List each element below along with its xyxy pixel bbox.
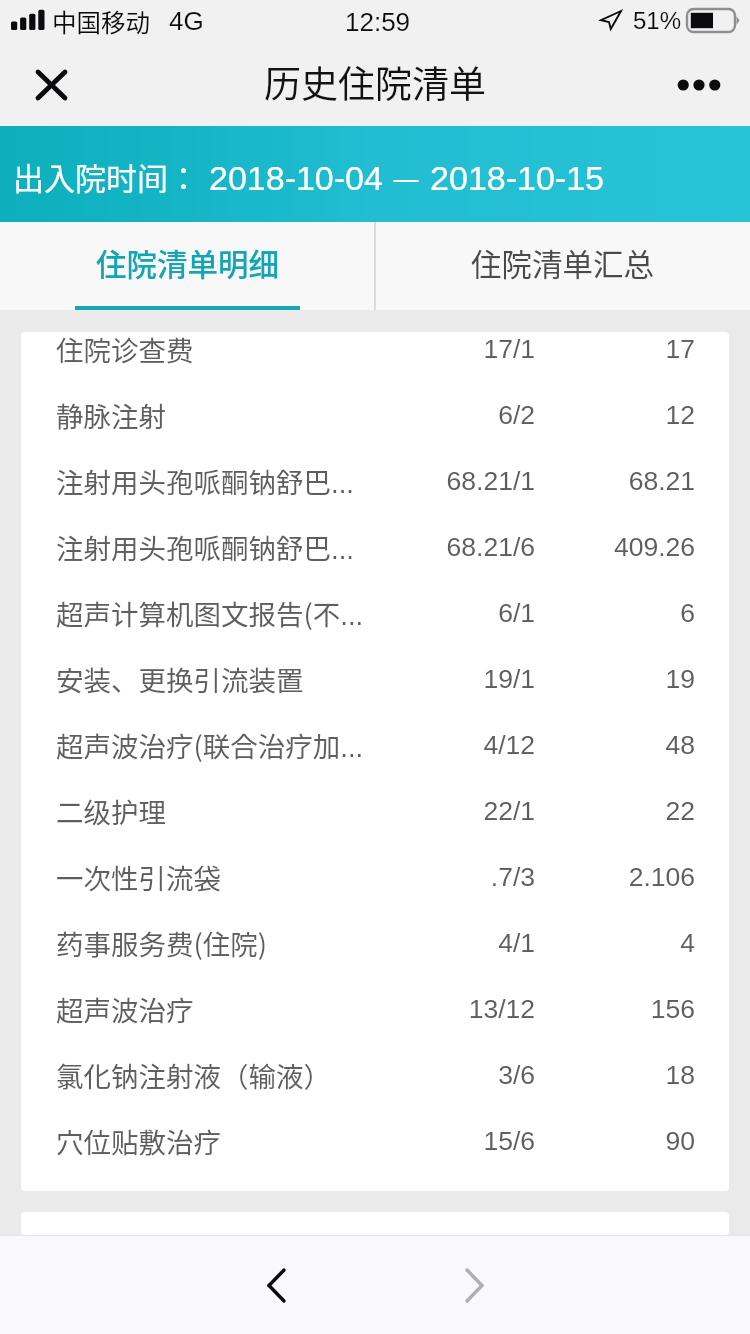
staticText: 中国移动	[52, 4, 150, 39]
staticText: 药事服务费(住院)	[56, 923, 268, 963]
staticText: 6	[535, 598, 695, 628]
staticText: 出入院时间： 2018-10-04 — 2018-10-15	[13, 154, 604, 199]
staticText: 409.26	[535, 532, 695, 562]
staticText: 6/1	[386, 598, 535, 628]
staticText: 静脉注射	[56, 395, 166, 435]
staticText: 19/1	[386, 664, 535, 694]
staticText: 12:59	[345, 7, 411, 36]
staticText: 4/12	[386, 730, 535, 760]
staticText: 历史住院清单	[264, 55, 486, 109]
staticText: 一次性引流袋	[56, 857, 221, 897]
staticText: 超声波治疗(联合治疗加...	[56, 725, 364, 765]
staticText: 二级护理	[56, 791, 166, 831]
staticText: 22	[535, 796, 695, 826]
button[interactable]: Close	[16, 50, 86, 120]
staticText: 3/6	[386, 1060, 535, 1090]
staticText: 13/12	[386, 994, 535, 1024]
staticText: 15/6	[386, 1126, 535, 1156]
button[interactable]: Back	[243, 1252, 309, 1318]
staticText: 安装、更换引流装置	[56, 659, 304, 699]
staticText: 住院诊查费	[56, 332, 194, 369]
staticText: .7/3	[386, 862, 535, 892]
button[interactable]: 注射用头孢哌酮钠舒巴...	[21, 514, 729, 580]
staticText: 156	[535, 994, 695, 1024]
button[interactable]: 超声计算机图文报告(不...	[21, 580, 729, 646]
staticText: 48	[535, 730, 695, 760]
staticText: 19	[535, 664, 695, 694]
staticText: 22/1	[386, 796, 535, 826]
staticText: 4	[535, 928, 695, 958]
staticText: 2.106	[535, 862, 695, 892]
button[interactable]: 住院清单汇总	[375, 222, 750, 310]
staticText: 90	[535, 1126, 695, 1156]
staticText: 68.21	[535, 466, 695, 496]
staticText: 注射用头孢哌酮钠舒巴...	[56, 527, 354, 567]
staticText: 氯化钠注射液（输液）	[56, 1055, 331, 1095]
staticText: 17/1	[386, 334, 535, 364]
staticText: 51%	[633, 7, 682, 34]
staticText: 住院清单汇总	[471, 241, 654, 285]
staticText: 12	[535, 400, 695, 430]
button[interactable]: Forward	[441, 1252, 507, 1318]
button[interactable]: More options	[664, 50, 734, 120]
staticText: 注射用头孢哌酮钠舒巴...	[56, 461, 354, 501]
staticText: 17	[535, 334, 695, 364]
staticText: 超声波治疗	[56, 989, 194, 1029]
staticText: 穴位贴敷治疗	[56, 1121, 221, 1161]
button[interactable]: 静脉注射	[21, 382, 729, 448]
staticText: 6/2	[386, 400, 535, 430]
button[interactable]: 安装、更换引流装置	[21, 646, 729, 712]
button[interactable]: 住院清单明细	[0, 222, 375, 310]
staticText: 68.21/6	[386, 532, 535, 562]
staticText: 4G	[169, 6, 204, 35]
button[interactable]: 一次性引流袋	[21, 844, 729, 910]
staticText: 超声计算机图文报告(不...	[56, 593, 364, 633]
staticText: 4/1	[386, 928, 535, 958]
button[interactable]: 注射用头孢哌酮钠舒巴...	[21, 448, 729, 514]
button[interactable]: 穴位贴敷治疗	[21, 1108, 729, 1174]
button[interactable]: 超声波治疗(联合治疗加...	[21, 712, 729, 778]
staticText: 68.21/1	[386, 466, 535, 496]
staticText: 18	[535, 1060, 695, 1090]
staticText: 住院清单明细	[96, 241, 279, 285]
button[interactable]: 药事服务费(住院)	[21, 910, 729, 976]
button[interactable]: 二级护理	[21, 778, 729, 844]
button[interactable]: 氯化钠注射液（输液）	[21, 1042, 729, 1108]
button[interactable]: 住院诊查费	[21, 332, 729, 382]
button[interactable]: 超声波治疗	[21, 976, 729, 1042]
